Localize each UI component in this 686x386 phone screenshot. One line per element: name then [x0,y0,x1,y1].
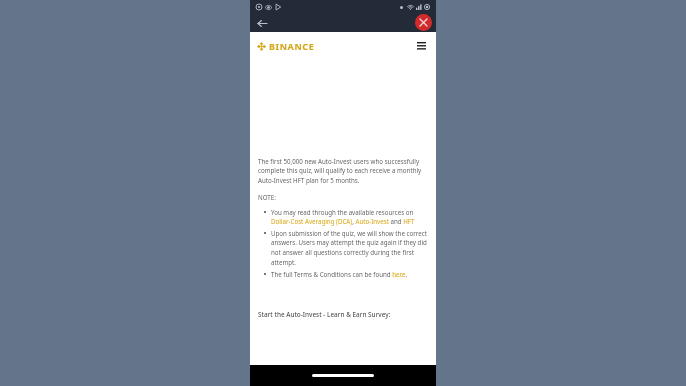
button[interactable]: BINANCE [257,40,315,52]
button[interactable]: Close [415,14,432,31]
staticText: Start the Auto-Invest - Learn & Earn Sur… [258,310,391,319]
button[interactable]: Back [254,15,270,31]
button[interactable]: You may read through the available resou… [264,208,428,226]
button[interactable]: Upon submission of the quiz, we will sho… [264,229,428,267]
staticText: The first 50,000 new Auto-Invest users w… [258,157,428,185]
staticText: The full Terms & Conditions can be found… [271,270,408,278]
staticText: Upon submission of the quiz, we will sho… [271,229,428,267]
staticText: NOTE: [258,193,276,201]
staticText: You may read through the available resou… [271,208,428,226]
button[interactable]: The full Terms & Conditions can be found… [264,270,428,278]
staticText: BINANCE [269,40,315,52]
button[interactable]: Menu [414,39,428,53]
